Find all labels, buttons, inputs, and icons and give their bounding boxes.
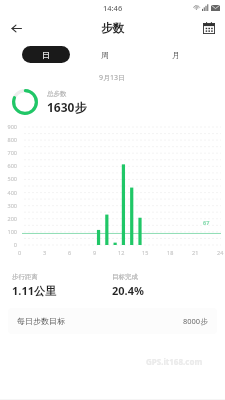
staticText: 9 — [93, 249, 97, 256]
staticText: 200 — [7, 215, 17, 222]
staticText: 67 — [203, 219, 210, 226]
staticText: 700 — [7, 149, 17, 156]
staticText: 900 — [7, 123, 17, 130]
staticText: 月 — [172, 50, 180, 60]
staticText: 300 — [7, 202, 17, 209]
staticText: 每日步数目标 — [17, 316, 65, 326]
staticText: 6 — [68, 249, 72, 256]
staticText: 3 — [43, 249, 47, 256]
staticText: 24 — [217, 249, 224, 256]
staticText: 目标完成 — [112, 273, 138, 281]
staticText: 日 — [42, 50, 50, 60]
staticText: 1630步 — [47, 99, 87, 115]
staticText: 14:46 — [103, 3, 123, 13]
button[interactable]: 周 — [70, 46, 140, 63]
staticText: 15 — [142, 249, 149, 256]
staticText: 12 — [118, 249, 125, 256]
staticText: GPS.it168.com — [146, 356, 203, 367]
staticText: 周 — [101, 50, 109, 60]
staticText: 步数 — [101, 21, 124, 35]
staticText: 400 — [7, 189, 17, 196]
staticText: 9月13日 — [99, 73, 126, 83]
staticText: 0 — [13, 241, 17, 248]
button[interactable]: 每日步数目标 — [8, 308, 217, 334]
staticText: 21 — [192, 249, 199, 256]
staticText: 100 — [7, 228, 17, 235]
staticText: 500 — [7, 175, 17, 182]
button[interactable]: Calendar — [198, 17, 220, 39]
staticText: 8000步 — [183, 316, 208, 326]
button[interactable]: 日 — [22, 46, 70, 63]
button[interactable]: Back — [5, 17, 27, 39]
staticText: 步行距离 — [12, 273, 38, 281]
staticText: 18 — [167, 249, 174, 256]
staticText: 1.11公里 — [12, 283, 56, 298]
staticText: 20.4% — [112, 283, 144, 298]
staticText: 总步数 — [47, 90, 67, 98]
staticText: 600 — [7, 162, 17, 169]
staticText: 0 — [18, 249, 22, 256]
staticText: 800 — [7, 136, 17, 143]
button[interactable]: 月 — [140, 46, 211, 63]
